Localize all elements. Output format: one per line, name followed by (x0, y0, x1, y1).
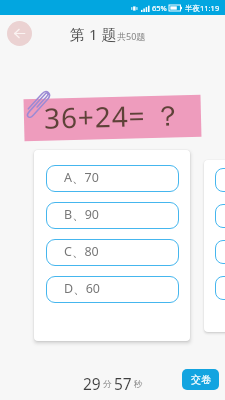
staticText: 第 1 题 (70, 24, 117, 44)
button[interactable]: Back (7, 21, 32, 46)
button[interactable]: C、80 (46, 239, 179, 266)
staticText: 分 (103, 379, 112, 390)
staticText: 交卷 (191, 373, 211, 386)
staticText: 57 (114, 373, 132, 394)
staticText: D、60 (64, 280, 100, 297)
staticText: 29 (83, 373, 101, 394)
staticText: 共50题 (117, 30, 146, 42)
staticText: A、70 (64, 169, 99, 186)
staticText: 36+24= ？ (43, 95, 183, 136)
button[interactable]: A、70 (46, 165, 179, 192)
staticText: 秒 (134, 379, 143, 390)
staticText: B、90 (64, 206, 99, 223)
staticText: 65% (152, 3, 167, 13)
button[interactable]: D、60 (46, 276, 179, 303)
staticText: 半夜11:19 (185, 3, 220, 13)
button[interactable]: B、90 (46, 202, 179, 229)
button[interactable]: 交卷 (182, 369, 219, 390)
staticText: C、80 (64, 243, 99, 260)
